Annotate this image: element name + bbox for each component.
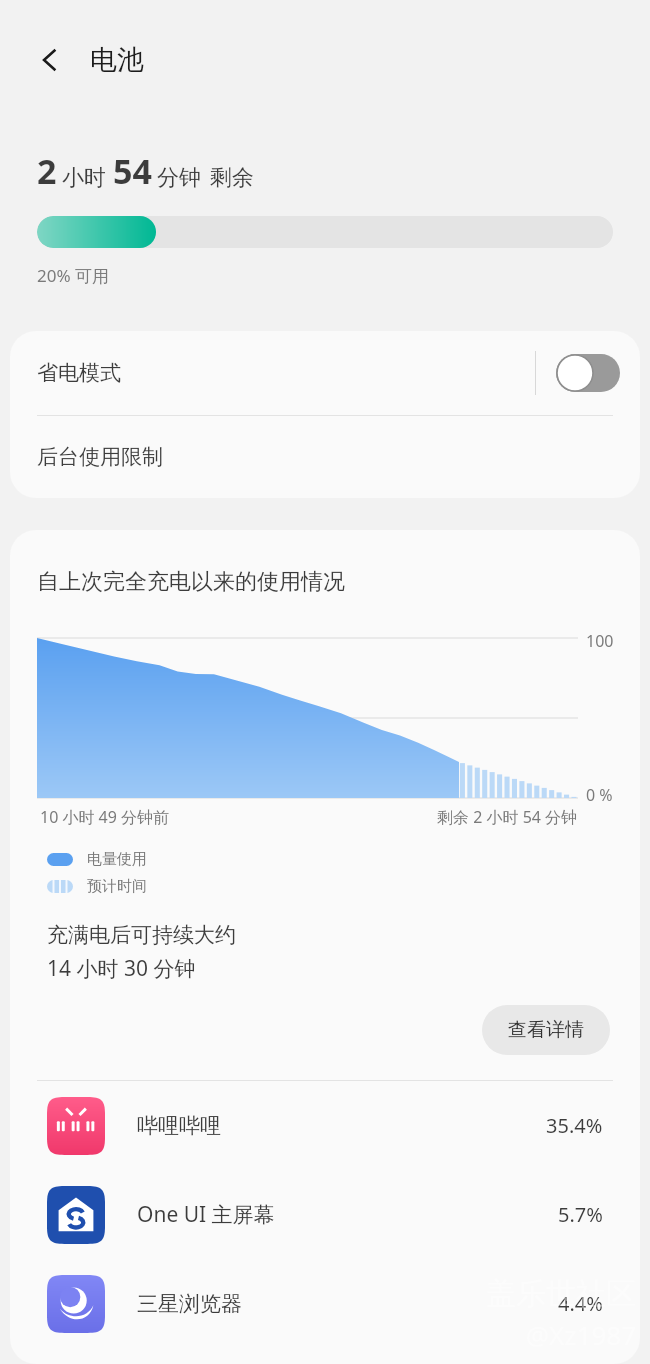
staticText: 省电模式 <box>37 360 535 386</box>
button[interactable]: 哔哩哔哩 <box>10 1081 640 1170</box>
staticText: 10 小时 49 分钟前 <box>40 806 170 828</box>
staticText: 哔哩哔哩 <box>137 1113 546 1139</box>
button[interactable]: Back <box>22 32 78 88</box>
staticText: 0 % <box>586 784 613 806</box>
button[interactable]: 三星浏览器 <box>10 1259 640 1348</box>
staticText: 35.4% <box>546 1112 603 1139</box>
staticText: One UI 主屏幕 <box>137 1200 558 1229</box>
staticText: 后台使用限制 <box>37 444 163 470</box>
staticText: 电量使用 <box>87 850 147 869</box>
staticText: 20% 可用 <box>37 264 109 287</box>
staticText: 14 小时 30 分钟 <box>47 954 196 983</box>
staticText: 预计时间 <box>87 877 147 896</box>
staticText: 分钟 <box>157 164 201 192</box>
staticText: 盖乐世社区 <box>486 1275 636 1313</box>
staticText: 三星浏览器 <box>137 1291 558 1317</box>
staticText: 充满电后可持续大约 <box>47 922 236 948</box>
button[interactable]: Power saving toggle <box>556 354 620 392</box>
staticText: 5.7% <box>558 1201 603 1228</box>
staticText: 100 <box>586 630 614 652</box>
staticText: 剩余 2 小时 54 分钟 <box>437 806 578 828</box>
staticText: 2 <box>37 148 57 194</box>
staticText: 查看详情 <box>508 1018 584 1042</box>
staticText: 54 <box>113 148 152 194</box>
button[interactable]: 查看详情 <box>482 1005 610 1055</box>
staticText: 自上次完全充电以来的使用情况 <box>37 568 345 596</box>
staticText: 4.4% <box>558 1290 603 1317</box>
button[interactable]: 省电模式 <box>10 331 640 415</box>
staticText: 剩余 <box>210 164 254 192</box>
button[interactable]: One UI 主屏幕 <box>10 1170 640 1259</box>
button[interactable]: 后台使用限制 <box>10 416 640 498</box>
staticText: 小时 <box>62 164 106 192</box>
staticText: 电池 <box>90 43 144 77</box>
